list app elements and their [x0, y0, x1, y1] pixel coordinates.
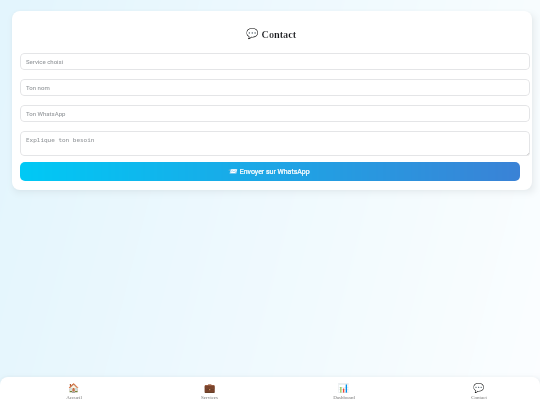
staticText: 💬 — [473, 383, 485, 394]
button[interactable]: Ton nom — [20, 79, 530, 96]
button[interactable]: Ton WhatsApp — [20, 105, 530, 122]
staticText: 📨 — [228, 167, 238, 176]
button[interactable]: 💬 — [446, 377, 512, 405]
staticText: Services — [201, 395, 218, 401]
button[interactable]: 📊 — [311, 377, 377, 405]
staticText: Ton WhatsApp — [26, 110, 66, 117]
staticText: 🏠 — [68, 383, 80, 394]
staticText: Accueil — [66, 395, 82, 401]
staticText: Service choisi — [26, 58, 64, 65]
staticText: Dashboard — [333, 395, 355, 401]
staticText: Envoyer sur WhatsApp — [238, 168, 310, 176]
button[interactable]: 🏠 — [41, 377, 107, 405]
staticText: Contact — [471, 395, 487, 401]
staticText: 📊 — [338, 383, 350, 394]
staticText: Contact — [259, 29, 297, 40]
button[interactable]: Service choisi — [20, 53, 530, 70]
button[interactable]: 📨 — [20, 162, 520, 181]
staticText: 💬 — [246, 28, 259, 40]
button[interactable]: 💼 — [176, 377, 242, 405]
staticText: Explique ton besoin — [26, 136, 95, 144]
button[interactable]: Explique ton besoin — [20, 131, 530, 156]
staticText: Ton nom — [26, 84, 50, 91]
staticText: 💼 — [204, 383, 216, 394]
